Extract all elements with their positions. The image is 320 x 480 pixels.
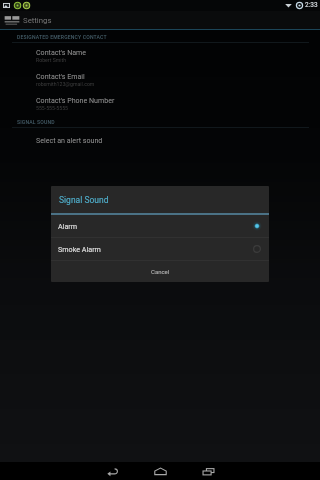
staticText: SIGNAL SOUND [17, 119, 55, 125]
staticText: robsmith123@gmail.com [36, 81, 95, 87]
staticText: Signal Sound [59, 195, 109, 205]
staticText: 555-555-5555 [36, 105, 69, 111]
staticText: Contact's Name [36, 48, 87, 56]
button[interactable]: Contact's Email [0, 67, 320, 91]
staticText: Robert Smith [36, 57, 67, 63]
staticText: 2:33 [305, 1, 318, 9]
staticText: Select an alert sound [36, 136, 103, 144]
staticText: Contact's Email [36, 72, 85, 80]
button[interactable]: Smoke Alarm [51, 238, 269, 260]
button[interactable]: Cancel [51, 261, 269, 282]
staticText: Smoke Alarm [58, 245, 101, 253]
button[interactable]: Alarm [51, 215, 269, 237]
button[interactable]: Home [136, 462, 184, 480]
staticText: Alarm [58, 222, 78, 230]
button[interactable]: Select an alert sound [0, 128, 320, 152]
button[interactable]: Contact's Phone Number [0, 91, 320, 115]
staticText: Cancel [151, 268, 170, 275]
staticText: Contact's Phone Number [36, 96, 115, 104]
button[interactable]: Contact's Name [0, 43, 320, 67]
button[interactable]: Back [88, 462, 136, 480]
staticText: Settings [23, 16, 52, 25]
button[interactable]: Recent apps [184, 462, 232, 480]
staticText: DESIGNATED EMERGENCY CONTACT [17, 34, 107, 40]
